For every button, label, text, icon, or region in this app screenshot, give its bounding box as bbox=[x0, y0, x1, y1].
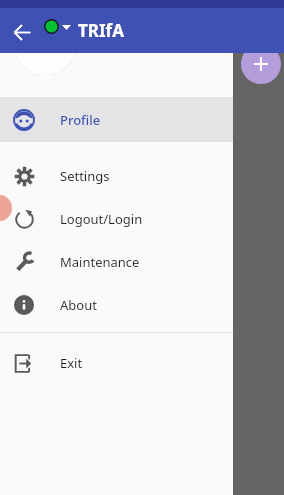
staticText: Settings bbox=[60, 167, 110, 185]
button[interactable]: Profile bbox=[0, 98, 233, 141]
staticText: TRIfA bbox=[78, 19, 124, 42]
staticText: About bbox=[60, 296, 97, 314]
button[interactable]: Add bbox=[241, 44, 281, 84]
button[interactable]: About bbox=[0, 283, 233, 326]
button[interactable]: Status bbox=[44, 19, 71, 34]
button[interactable]: Settings bbox=[0, 154, 233, 197]
staticText: Exit bbox=[60, 354, 83, 372]
button[interactable]: Exit bbox=[0, 341, 233, 384]
button[interactable] bbox=[233, 0, 284, 495]
button[interactable]: Back bbox=[6, 16, 38, 48]
staticText: Logout/Login bbox=[60, 210, 143, 228]
staticText: me bbox=[75, 39, 98, 59]
button[interactable]: Maintenance bbox=[0, 240, 233, 283]
staticText: Profile bbox=[60, 111, 101, 129]
staticText: Maintenance bbox=[60, 253, 140, 271]
button[interactable]: Logout/Login bbox=[0, 197, 233, 240]
